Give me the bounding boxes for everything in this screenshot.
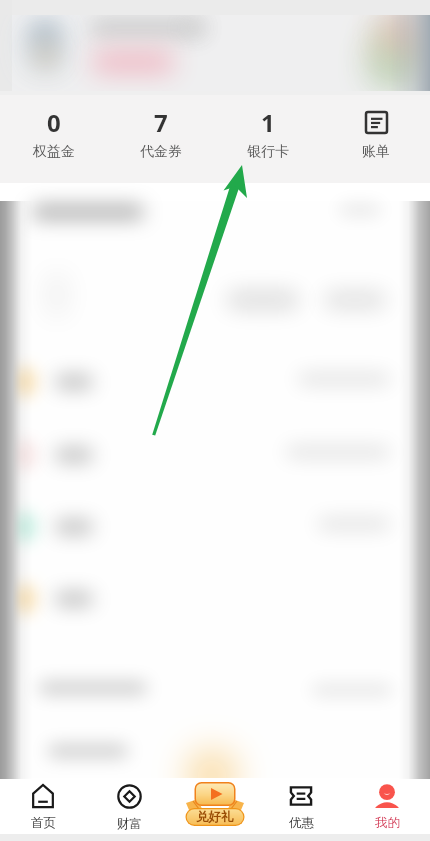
staticText: 财富 — [117, 816, 142, 832]
staticText: 7 — [154, 106, 168, 139]
button[interactable]: 账单 — [322, 95, 430, 169]
staticText: 1 — [261, 106, 275, 139]
other: 账单 — [365, 111, 388, 134]
staticText: 银行卡 — [247, 143, 289, 161]
staticText: 我的 — [375, 815, 400, 831]
staticText: 首页 — [31, 815, 56, 831]
staticText: 优惠 — [289, 815, 314, 831]
staticText: 权益金 — [33, 143, 75, 161]
staticText: 0 — [47, 106, 61, 139]
button[interactable]: 我的 — [344, 778, 430, 834]
button[interactable]: 优惠 — [258, 778, 344, 834]
button[interactable]: 7 — [107, 95, 214, 169]
staticText: 兑好礼 — [196, 809, 234, 825]
staticText: 代金券 — [140, 143, 182, 161]
button[interactable]: 首页 — [0, 778, 86, 834]
button[interactable]: 兑好礼 — [180, 778, 250, 828]
button[interactable]: 财富 — [86, 778, 172, 834]
staticText: 账单 — [362, 143, 390, 161]
button[interactable]: 1 — [214, 95, 322, 169]
button[interactable]: 0 — [0, 95, 107, 169]
